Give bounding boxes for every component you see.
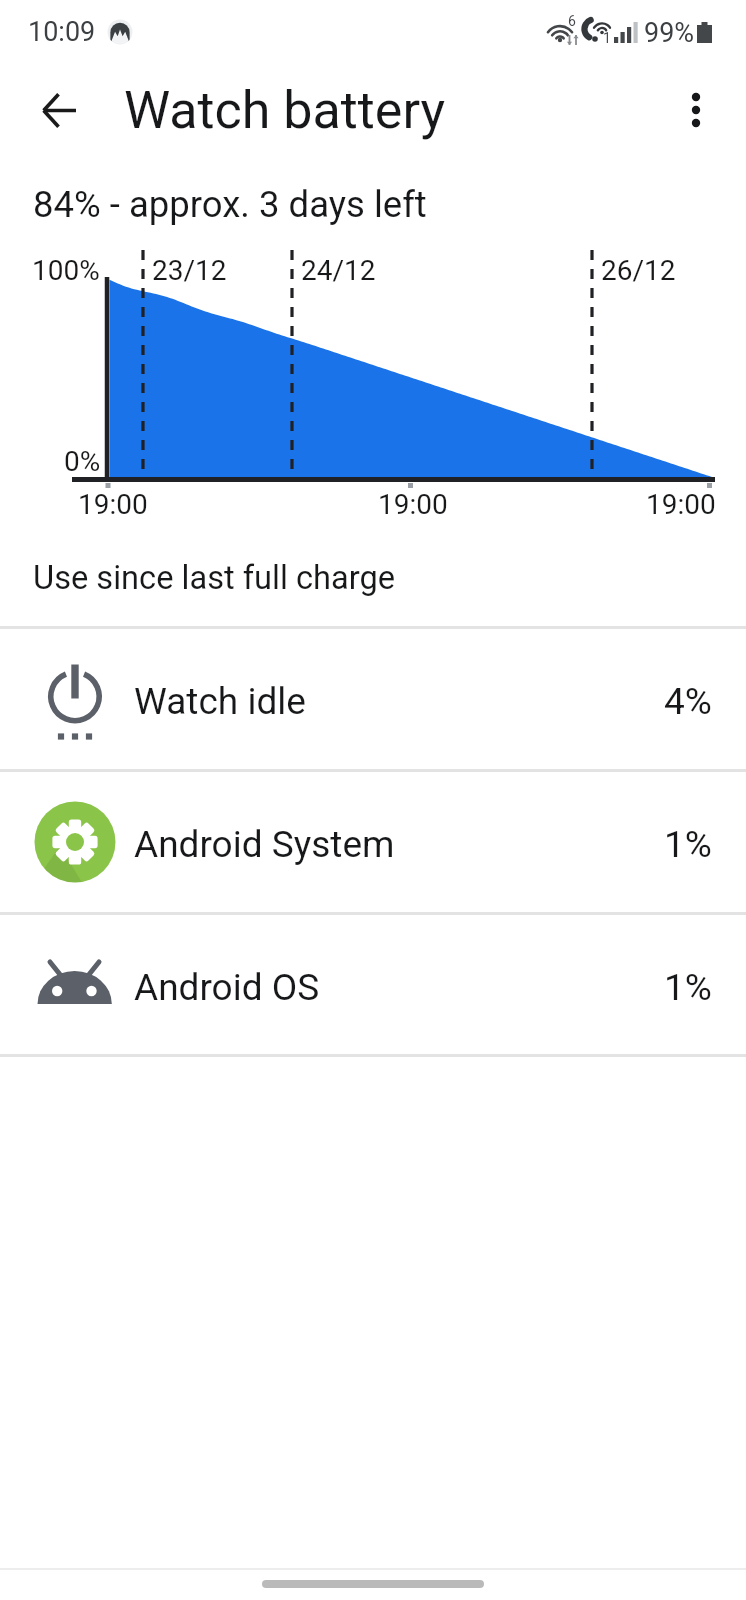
staticText: 100% <box>32 254 100 287</box>
button[interactable]: Android System <box>0 769 746 914</box>
staticText: 99% <box>644 17 695 49</box>
staticText: Android System <box>134 823 395 866</box>
staticText: 0% <box>64 445 101 478</box>
staticText: 1% <box>664 823 712 866</box>
staticText: Watch idle <box>134 680 306 723</box>
staticText: 23/12 <box>152 254 227 287</box>
staticText: 19:00 <box>646 488 716 521</box>
staticText: 6 <box>568 13 576 29</box>
staticText: 1% <box>664 966 712 1009</box>
staticText: 19:00 <box>78 488 148 521</box>
button[interactable]: Back <box>22 73 96 147</box>
staticText: 1 <box>603 30 611 46</box>
staticText: 24/12 <box>301 254 376 287</box>
staticText: 19:00 <box>378 488 448 521</box>
staticText: 84% - approx. 3 days left <box>33 183 427 226</box>
button[interactable]: Android OS <box>0 912 746 1056</box>
staticText: Android OS <box>134 966 320 1009</box>
staticText: 4% <box>664 680 712 723</box>
button[interactable]: Watch idle <box>0 626 746 771</box>
staticText: Watch battery <box>124 80 446 141</box>
staticText: 26/12 <box>601 254 676 287</box>
staticText: 10:09 <box>28 16 96 48</box>
button[interactable]: More options <box>668 82 724 138</box>
staticText: Use since last full charge <box>33 559 396 597</box>
